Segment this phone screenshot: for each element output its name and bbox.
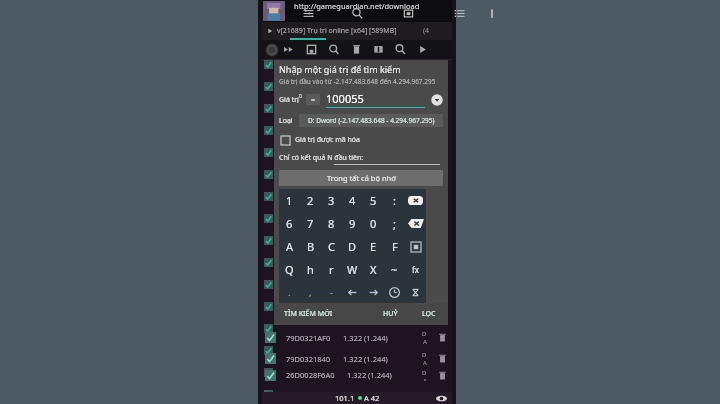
staticText: 1.322 (1.244) bbox=[347, 370, 392, 380]
button[interactable]: r bbox=[321, 258, 342, 281]
button[interactable]: F bbox=[384, 235, 405, 258]
button[interactable]: h bbox=[300, 258, 321, 281]
button[interactable]: LỌC bbox=[422, 309, 436, 319]
staticText: 0 bbox=[370, 216, 377, 231]
staticText: 8 bbox=[328, 216, 335, 231]
staticText: Nhập một giá trị để tìm kiếm bbox=[279, 63, 401, 75]
button[interactable]: HUỶ bbox=[383, 309, 398, 319]
button[interactable]: 79D0321840 bbox=[262, 348, 452, 369]
staticText: - bbox=[330, 286, 333, 298]
button[interactable]: ; bbox=[384, 212, 405, 235]
staticText: Giá trị đầu vào từ -2.147.483.648 đến 4.… bbox=[279, 77, 436, 86]
button[interactable]: Expand value options bbox=[431, 94, 443, 106]
staticText: 1.322 (1.244) bbox=[343, 354, 388, 364]
staticText: A bbox=[286, 239, 294, 254]
button[interactable]: Search bbox=[394, 43, 407, 56]
staticText: A bbox=[423, 377, 427, 381]
button[interactable]: 5 bbox=[363, 189, 384, 212]
button[interactable]: 79D0321AF0 bbox=[262, 327, 452, 348]
staticText: A bbox=[423, 359, 427, 367]
button[interactable]: Fast forward bbox=[282, 43, 295, 56]
button[interactable]: D bbox=[342, 235, 363, 258]
button[interactable]: Menu bbox=[453, 7, 466, 20]
staticText: X bbox=[370, 262, 377, 277]
staticText: . bbox=[288, 286, 291, 298]
button[interactable]: - bbox=[321, 281, 342, 303]
button[interactable]: : bbox=[384, 189, 405, 212]
button[interactable]: Keyboard layout bbox=[405, 235, 426, 258]
button[interactable]: Search bbox=[351, 7, 364, 20]
button[interactable]: Equalizer bbox=[302, 7, 315, 20]
button[interactable]: Trong tất cả bộ nhớ bbox=[279, 170, 443, 186]
button[interactable]: 0 bbox=[363, 212, 384, 235]
staticText: LỌC bbox=[422, 309, 436, 319]
button[interactable]: Delete row bbox=[437, 332, 448, 343]
staticText: ; bbox=[393, 216, 396, 231]
button[interactable]: Save bbox=[402, 7, 415, 20]
staticText: D bbox=[422, 351, 427, 359]
button[interactable]: Delete bbox=[350, 43, 363, 56]
staticText: 2 bbox=[307, 193, 314, 208]
button[interactable]: ~ bbox=[384, 258, 405, 281]
staticText: E bbox=[370, 239, 377, 254]
staticText: 79D0321840 bbox=[286, 354, 331, 364]
button[interactable]: 26D0028F6A0 bbox=[262, 369, 452, 381]
button[interactable]: Right bbox=[363, 281, 384, 303]
button[interactable]: C bbox=[321, 235, 342, 258]
staticText: , bbox=[309, 286, 312, 298]
staticText: ~ bbox=[391, 262, 398, 277]
button[interactable]: Save bbox=[305, 43, 318, 56]
button[interactable]: W bbox=[342, 258, 363, 281]
staticText: D bbox=[422, 369, 427, 377]
button[interactable]: Operator equals bbox=[306, 94, 320, 105]
staticText: Giá trị bbox=[279, 95, 299, 105]
button[interactable]: 8 bbox=[321, 212, 342, 235]
button[interactable]: Functions bbox=[405, 258, 426, 281]
staticText: C bbox=[328, 239, 335, 254]
staticText: 4 bbox=[349, 193, 356, 208]
button[interactable]: Search unknown bbox=[328, 43, 341, 56]
staticText: A bbox=[423, 338, 427, 346]
staticText: 9 bbox=[349, 216, 356, 231]
button[interactable]: 9 bbox=[342, 212, 363, 235]
button[interactable]: B bbox=[300, 235, 321, 258]
staticText: (4 bbox=[423, 26, 430, 36]
button[interactable]: History bbox=[384, 281, 405, 303]
button[interactable]: GameGuardian bbox=[265, 43, 279, 57]
button[interactable]: X bbox=[363, 258, 384, 281]
staticText: HUỶ bbox=[383, 309, 398, 319]
button[interactable]: 7 bbox=[300, 212, 321, 235]
button[interactable]: 3 bbox=[321, 189, 342, 212]
button[interactable]: Delete row bbox=[437, 370, 448, 381]
button[interactable]: Left bbox=[342, 281, 363, 303]
button[interactable]: Delete row bbox=[437, 353, 448, 364]
button[interactable]: Giá trị được mã hóa bbox=[281, 135, 448, 145]
button[interactable]: Toggle visibility bbox=[436, 393, 447, 404]
button[interactable]: Collapse keypad bbox=[405, 281, 426, 303]
button[interactable]: . bbox=[279, 281, 300, 303]
staticText: D bbox=[348, 239, 357, 254]
button[interactable]: Clear bbox=[405, 212, 426, 235]
button[interactable]: , bbox=[300, 281, 321, 303]
button[interactable]: 4 bbox=[342, 189, 363, 212]
button[interactable]: 2 bbox=[300, 189, 321, 212]
staticText: 0 bbox=[299, 93, 302, 100]
staticText: TÌM KIẾM MỚI bbox=[284, 309, 333, 319]
button[interactable]: D: Dword (-2.147.483.648 - 4.294.967.295… bbox=[299, 114, 443, 127]
button[interactable]: A bbox=[279, 235, 300, 258]
staticText: 3 bbox=[328, 193, 335, 208]
button[interactable]: 6 bbox=[279, 212, 300, 235]
staticText: fx bbox=[412, 264, 419, 275]
staticText: Q bbox=[285, 262, 294, 277]
staticText: Chỉ có kết quả N đầu tiên: bbox=[279, 153, 364, 163]
button[interactable]: Backspace bbox=[405, 189, 426, 212]
button[interactable]: E bbox=[363, 235, 384, 258]
staticText: 1 bbox=[286, 193, 293, 208]
button[interactable]: TÌM KIẾM MỚI bbox=[284, 309, 333, 319]
button[interactable]: 1 bbox=[279, 189, 300, 212]
staticText: Loại bbox=[279, 116, 293, 126]
button[interactable]: Q bbox=[279, 258, 300, 281]
button[interactable]: Play bbox=[416, 43, 429, 56]
staticText: h bbox=[307, 262, 314, 277]
button[interactable]: Refresh bbox=[372, 43, 385, 56]
